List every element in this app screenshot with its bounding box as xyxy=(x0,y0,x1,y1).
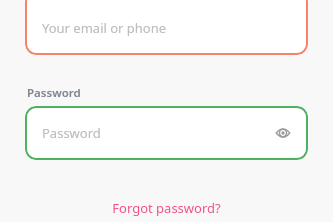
button[interactable]: Your email or phone xyxy=(25,0,308,55)
staticText: Forgot password? xyxy=(112,199,221,217)
staticText: Your email or phone xyxy=(42,19,167,37)
staticText: Password xyxy=(27,85,81,101)
button[interactable]: Password xyxy=(25,106,308,160)
button[interactable]: Forgot password? xyxy=(102,196,231,220)
button[interactable]: Show password xyxy=(270,120,296,146)
staticText: Password xyxy=(42,124,101,142)
